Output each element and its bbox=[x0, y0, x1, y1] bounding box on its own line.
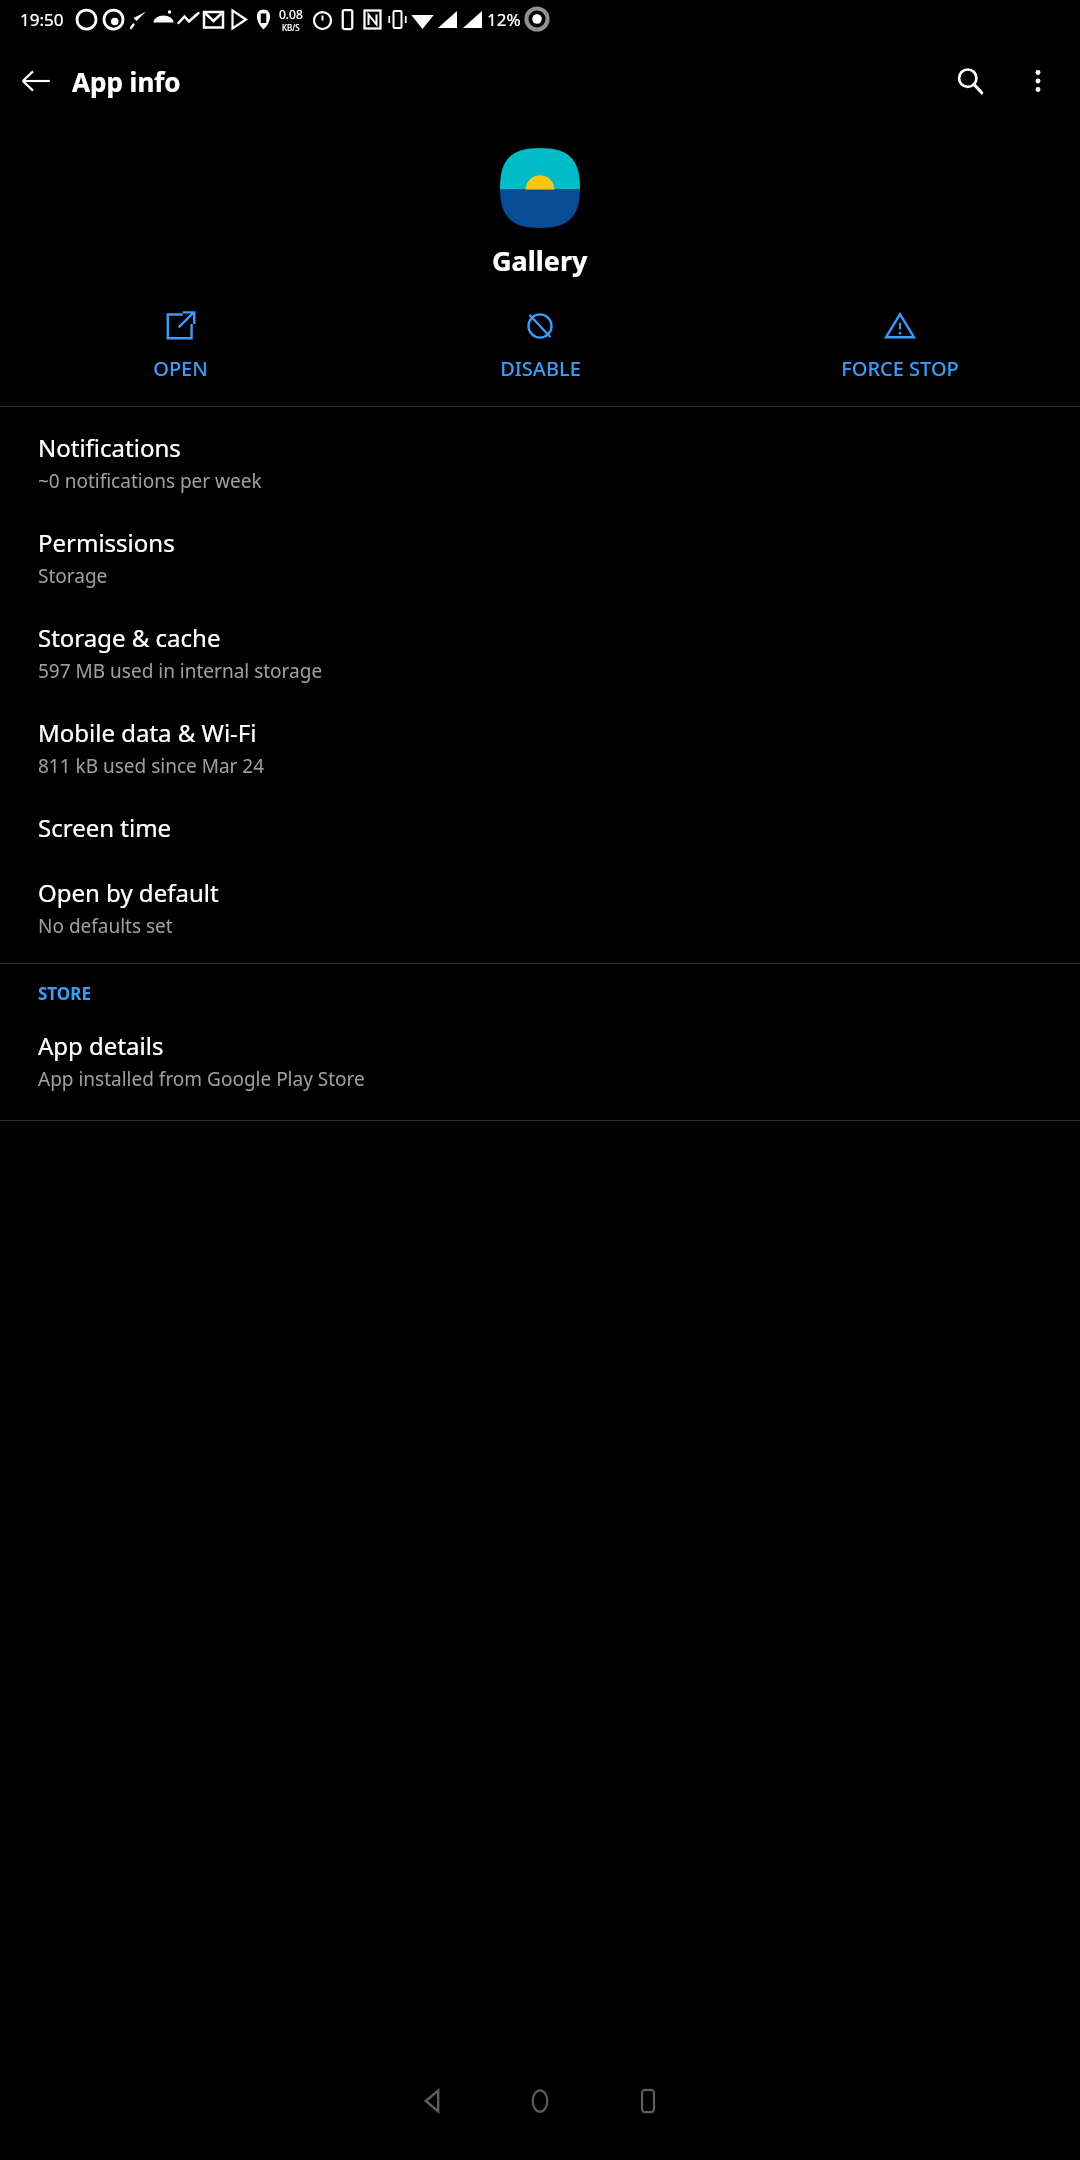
staticText: Gallery bbox=[492, 242, 588, 279]
staticText: KB/S bbox=[282, 22, 300, 33]
button[interactable]: FORCE STOP bbox=[720, 303, 1080, 388]
staticText: Storage & cache bbox=[38, 621, 221, 654]
staticText: App info bbox=[72, 64, 181, 99]
button[interactable]: OPEN bbox=[0, 303, 360, 388]
button[interactable]: More options bbox=[1004, 47, 1072, 115]
staticText: 597 MB used in internal storage bbox=[38, 658, 323, 684]
button[interactable]: DISABLE bbox=[360, 303, 720, 388]
button[interactable]: Notifications bbox=[0, 415, 1080, 510]
staticText: Notifications bbox=[38, 431, 181, 464]
staticText: App installed from Google Play Store bbox=[38, 1066, 365, 1092]
button[interactable]: Back bbox=[0, 45, 72, 117]
button[interactable]: Storage & cache bbox=[0, 605, 1080, 700]
staticText: Screen time bbox=[38, 811, 172, 844]
staticText: 19:50 bbox=[20, 8, 64, 31]
button[interactable]: Recents bbox=[594, 2047, 702, 2155]
button[interactable]: Mobile data & Wi-Fi bbox=[0, 700, 1080, 795]
staticText: OPEN bbox=[153, 355, 208, 382]
staticText: No defaults set bbox=[38, 913, 173, 939]
button[interactable]: Permissions bbox=[0, 510, 1080, 605]
button[interactable]: Open by default bbox=[0, 860, 1080, 955]
staticText: ~0 notifications per week bbox=[38, 468, 262, 494]
button[interactable]: App details bbox=[0, 1013, 1080, 1108]
staticText: Permissions bbox=[38, 526, 175, 559]
staticText: App details bbox=[38, 1029, 164, 1062]
staticText: FORCE STOP bbox=[841, 355, 959, 382]
staticText: Storage bbox=[38, 563, 108, 589]
staticText: STORE bbox=[38, 982, 91, 1005]
staticText: DISABLE bbox=[500, 355, 581, 382]
staticText: Mobile data & Wi-Fi bbox=[38, 716, 257, 749]
button[interactable]: Screen time bbox=[0, 795, 1080, 860]
button[interactable]: Search bbox=[936, 47, 1004, 115]
button[interactable]: Home bbox=[486, 2047, 594, 2155]
staticText: Open by default bbox=[38, 876, 219, 909]
staticText: 12% bbox=[487, 8, 521, 31]
staticText: 0.08 bbox=[279, 6, 303, 22]
button[interactable]: Back bbox=[378, 2047, 486, 2155]
staticText: 811 kB used since Mar 24 bbox=[38, 753, 265, 779]
